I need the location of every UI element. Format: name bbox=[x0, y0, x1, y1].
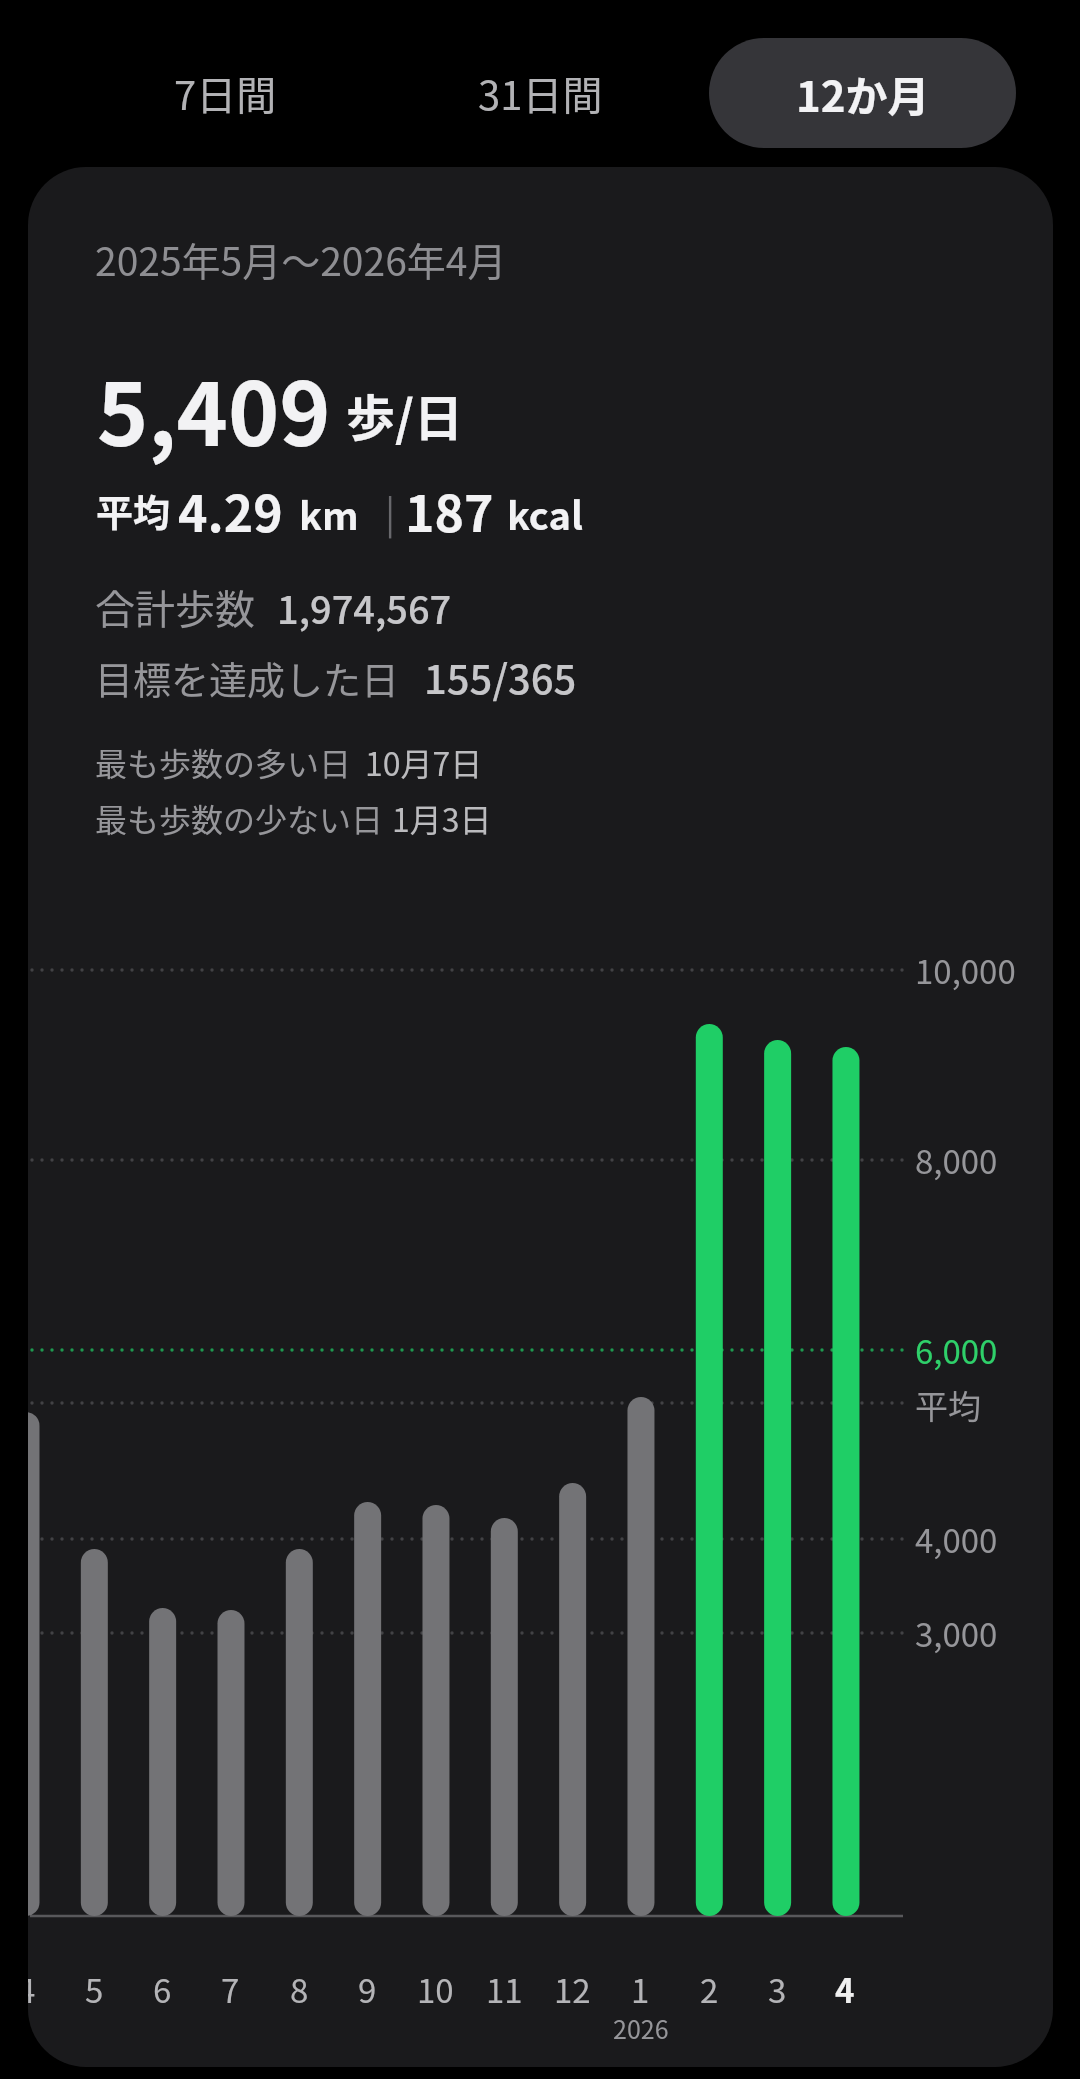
staticText: 10月7日 bbox=[365, 739, 483, 785]
staticText: 5,409 bbox=[97, 345, 331, 471]
staticText: | bbox=[385, 484, 396, 539]
staticText: 1,974,567 bbox=[277, 580, 452, 635]
button[interactable]: 12か月 bbox=[709, 38, 1016, 148]
staticText: 10 bbox=[417, 1965, 454, 2013]
staticText: 7 bbox=[221, 1965, 240, 2013]
staticText: 2026 bbox=[613, 2010, 669, 2046]
staticText: 7日間 bbox=[174, 64, 277, 122]
staticText: kcal bbox=[507, 486, 583, 541]
staticText: 最も歩数の多い日 bbox=[95, 739, 352, 785]
staticText: 最も歩数の少ない日 bbox=[95, 795, 384, 841]
staticText: 8,000 bbox=[915, 1136, 998, 1184]
staticText: 合計歩数 bbox=[95, 578, 255, 636]
staticText: 1月3日 bbox=[392, 795, 492, 841]
staticText: 1 bbox=[631, 1965, 650, 2013]
staticText: 6 bbox=[153, 1965, 172, 2013]
staticText: 平均 bbox=[96, 484, 170, 538]
staticText: km bbox=[299, 486, 359, 541]
staticText: 5 bbox=[85, 1965, 104, 2013]
staticText: 歩/日 bbox=[346, 379, 463, 450]
staticText: 10,000 bbox=[915, 946, 1016, 994]
staticText: 8 bbox=[290, 1965, 309, 2013]
staticText: 3,000 bbox=[915, 1609, 998, 1657]
staticText: 11 bbox=[486, 1965, 523, 2013]
staticText: 4 bbox=[28, 1965, 36, 2013]
staticText: 6,000 bbox=[915, 1326, 998, 1374]
staticText: 155/365 bbox=[424, 648, 577, 706]
button[interactable]: 7日間 bbox=[130, 38, 320, 148]
staticText: 4 bbox=[835, 1965, 855, 2013]
staticText: 3 bbox=[768, 1965, 787, 2013]
staticText: 12か月 bbox=[796, 63, 930, 124]
staticText: 9 bbox=[358, 1965, 377, 2013]
staticText: 2 bbox=[700, 1965, 719, 2013]
staticText: 187 bbox=[405, 474, 494, 546]
staticText: 12 bbox=[554, 1965, 591, 2013]
staticText: 2025年5月〜2026年4月 bbox=[95, 231, 507, 287]
button[interactable]: 31日間 bbox=[445, 38, 635, 148]
staticText: 4.29 bbox=[178, 474, 283, 546]
staticText: 31日間 bbox=[478, 64, 603, 122]
staticText: 平均 bbox=[915, 1381, 981, 1429]
staticText: 目標を達成した日 bbox=[95, 650, 400, 705]
staticText: 4,000 bbox=[915, 1515, 998, 1563]
